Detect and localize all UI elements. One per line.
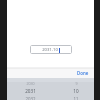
staticText: 2031-10 xyxy=(42,47,58,53)
button[interactable]: Done xyxy=(75,69,91,77)
staticText: 11 xyxy=(73,96,79,100)
staticText: Done xyxy=(77,70,89,76)
staticText: 9 xyxy=(75,81,78,86)
button[interactable]: Month picker xyxy=(65,78,87,100)
staticText: 10 xyxy=(73,88,79,94)
staticText: 2032 xyxy=(25,96,36,100)
staticText: 2031 xyxy=(25,88,36,94)
button[interactable]: Year picker xyxy=(15,78,45,100)
staticText: 2030 xyxy=(26,81,35,86)
button[interactable]: 2031-10 xyxy=(30,45,72,54)
